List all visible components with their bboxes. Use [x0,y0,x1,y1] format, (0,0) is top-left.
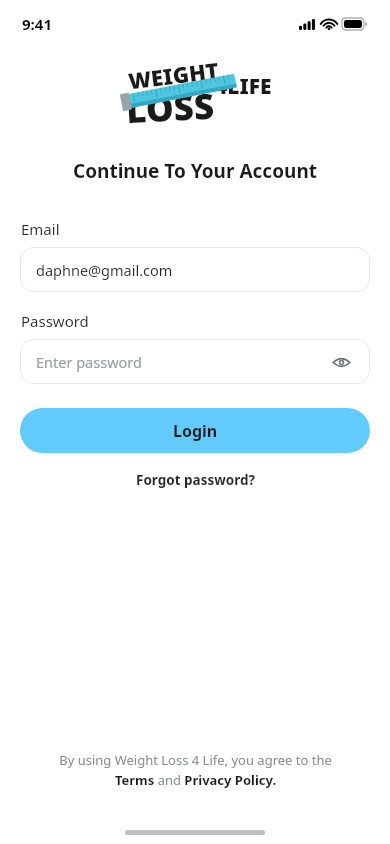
staticText: Email [21,219,60,239]
staticText: Login [173,420,218,442]
staticText: 9:41 [22,14,52,34]
button[interactable]: Show password [328,349,354,375]
button[interactable]: By using Weight Loss 4 Life, you agree t… [24,751,366,789]
button[interactable]: Enter password [20,339,370,384]
staticText: daphne@gmail.com [36,260,173,280]
button[interactable]: Forgot password? [0,467,390,493]
staticText: By using Weight Loss 4 Life, you agree t… [59,751,332,789]
button[interactable]: Login [20,408,370,453]
staticText: Enter password [36,352,328,372]
staticText: WEIGHT [126,55,220,95]
staticText: Forgot password? [136,471,255,489]
staticText: Password [21,311,89,331]
staticText: LOSS [125,82,215,134]
button[interactable]: daphne@gmail.com [20,247,370,292]
staticText: 4LIFE [215,72,272,101]
staticText: Continue To Your Account [0,158,390,184]
